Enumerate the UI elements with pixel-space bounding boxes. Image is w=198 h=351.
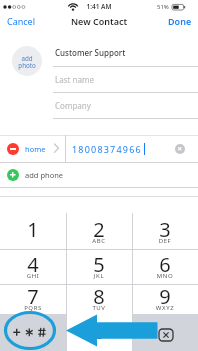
staticText: Last name — [55, 74, 94, 85]
button[interactable] — [132, 314, 198, 351]
button[interactable]: Done — [163, 12, 196, 29]
button[interactable] — [0, 249, 66, 285]
staticText: Customer Support — [55, 47, 126, 58]
staticText: 6 — [132, 251, 198, 278]
button[interactable] — [132, 249, 198, 285]
staticText: 0 — [66, 318, 132, 345]
staticText: 7 — [0, 283, 66, 310]
button[interactable]: add photo — [12, 46, 42, 76]
button[interactable] — [132, 284, 198, 314]
button[interactable] — [66, 314, 132, 351]
staticText: PQRS — [0, 304, 66, 312]
staticText: WXYZ — [132, 304, 198, 312]
staticText: 18008374966 — [72, 143, 142, 155]
staticText: add photo — [18, 54, 36, 69]
button[interactable] — [66, 249, 132, 285]
staticText: Cancel — [7, 15, 36, 27]
staticText: 8 — [66, 283, 132, 310]
button[interactable]: Customer Support — [53, 40, 198, 66]
staticText: 51% — [157, 3, 169, 11]
button[interactable]: Last name — [53, 66, 198, 92]
staticText: Done — [168, 15, 192, 27]
staticText: Company — [55, 100, 91, 111]
staticText: 2 — [66, 216, 132, 243]
staticText: 9 — [132, 283, 198, 310]
button[interactable] — [0, 284, 66, 314]
staticText: 1:41 AM — [0, 2, 198, 11]
staticText: 4 — [0, 251, 66, 278]
button[interactable] — [132, 213, 198, 249]
button[interactable]: home — [0, 135, 198, 162]
button[interactable] — [66, 213, 132, 249]
staticText: home — [25, 144, 46, 154]
staticText: 3 — [132, 216, 198, 243]
button[interactable]: Cancel — [2, 12, 40, 29]
button[interactable]: add phone — [0, 162, 198, 187]
staticText: 1 — [0, 216, 66, 243]
staticText: DEF — [132, 237, 198, 245]
staticText: New Contact — [0, 15, 198, 27]
button[interactable] — [0, 213, 66, 249]
button[interactable] — [175, 144, 185, 154]
button[interactable]: Company — [53, 92, 198, 118]
staticText: 5 — [66, 251, 132, 278]
staticText: TUV — [66, 304, 132, 312]
staticText: JKL — [66, 272, 132, 280]
staticText: ABC — [66, 237, 132, 245]
button[interactable] — [0, 314, 66, 351]
button[interactable] — [66, 284, 132, 314]
staticText: GHI — [0, 272, 66, 280]
staticText: add phone — [25, 170, 64, 180]
staticText: MNO — [132, 272, 198, 280]
